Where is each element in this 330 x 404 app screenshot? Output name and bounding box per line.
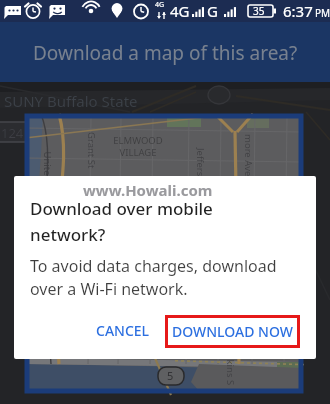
staticText: To avoid data charges, download over a W… — [30, 255, 277, 300]
staticText: 5 — [167, 368, 174, 383]
staticText: DOWNLOAD NOW — [172, 322, 293, 341]
staticText: www.Howali.com — [83, 180, 213, 200]
staticText: PM — [315, 6, 330, 20]
staticText: SUNY Buffalo State — [4, 91, 138, 111]
staticText: 35 — [253, 4, 265, 18]
staticText: 124 — [1, 124, 24, 142]
staticText: 4G — [155, 0, 165, 10]
button[interactable]: Download a map of this area? — [0, 22, 330, 82]
staticText: G — [207, 1, 218, 21]
staticText: Grant St — [85, 132, 98, 169]
staticText: Jeffers — [194, 148, 207, 177]
staticText: Download over mobile network? — [30, 197, 213, 246]
staticText: CANCEL — [96, 321, 150, 340]
staticText: United — [40, 151, 53, 181]
staticText: 4G — [170, 1, 190, 21]
staticText: Download a map of this area? — [33, 40, 298, 66]
staticText: more Ave — [242, 134, 255, 177]
staticText: 6:37 — [283, 1, 313, 21]
button[interactable]: DOWNLOAD NOW — [165, 315, 300, 348]
button[interactable]: CANCEL — [83, 311, 163, 349]
staticText: ELMWOOD VILLAGE — [91, 134, 185, 158]
staticText: kins S — [223, 359, 236, 385]
